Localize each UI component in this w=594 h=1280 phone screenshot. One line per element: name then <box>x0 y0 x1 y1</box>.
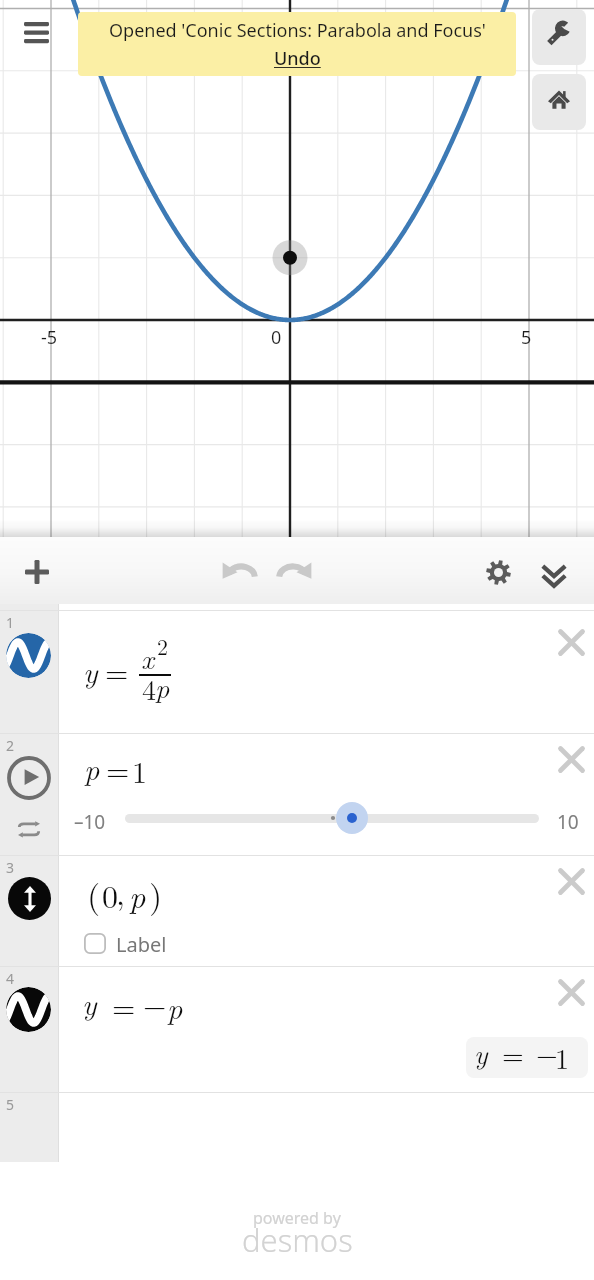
staticText: ) <box>149 870 163 918</box>
staticText: 5 <box>6 1095 15 1114</box>
button[interactable]: Delete <box>547 618 594 666</box>
staticText: 2 <box>6 736 15 755</box>
staticText: , <box>116 869 125 914</box>
staticText: p <box>129 872 146 917</box>
staticText: y <box>83 649 98 691</box>
button[interactable]: Point style <box>8 877 51 920</box>
button[interactable]: Label <box>84 931 167 955</box>
staticText: desmos <box>242 1219 353 1261</box>
button[interactable]: Add expression <box>15 544 59 600</box>
staticText: 2 <box>157 630 169 661</box>
staticText: p <box>167 985 183 1027</box>
staticText: = <box>106 747 130 790</box>
staticText: 10 <box>557 809 579 835</box>
staticText: p <box>84 746 100 788</box>
button[interactable]: Redo <box>271 545 322 595</box>
button[interactable]: Undo <box>212 545 263 595</box>
staticText: –10 <box>74 809 106 835</box>
button[interactable]: Delete <box>547 735 594 783</box>
staticText: x <box>141 637 154 677</box>
button[interactable]: Reverse direction <box>9 809 49 849</box>
button[interactable]: Toggle graph <box>6 987 51 1032</box>
button[interactable]: Collapse <box>531 548 577 603</box>
button[interactable]: Menu <box>4 2 68 64</box>
button[interactable]: Play slider <box>7 756 51 800</box>
staticText: 4 <box>142 668 157 708</box>
button[interactable]: Settings <box>476 544 521 601</box>
staticText: -5 <box>41 325 58 350</box>
button[interactable]: Slider p <box>125 814 539 823</box>
button[interactable]: Home <box>532 74 586 130</box>
staticText: 3 <box>6 858 15 877</box>
staticText: 1 <box>6 613 15 632</box>
button[interactable]: Toggle graph <box>6 633 51 678</box>
staticText: Label <box>116 931 167 955</box>
staticText: y <box>82 981 97 1023</box>
staticText: = <box>502 1033 524 1073</box>
staticText: 4 <box>6 969 15 988</box>
staticText: Undo <box>274 46 321 71</box>
button[interactable]: Opened 'Conic Sections: Parabola and Foc… <box>78 12 516 76</box>
staticText: p <box>155 666 170 706</box>
staticText: 1 <box>555 1037 570 1077</box>
staticText: = <box>105 649 129 692</box>
staticText: = <box>112 984 136 1027</box>
staticText: − <box>536 1032 558 1072</box>
staticText: powered by <box>253 1207 341 1229</box>
staticText: 0 <box>102 872 119 917</box>
staticText: y <box>474 1032 488 1072</box>
staticText: − <box>143 982 167 1025</box>
button[interactable]: y = -1 <box>466 1037 588 1078</box>
staticText: 0 <box>271 325 282 350</box>
staticText: Opened 'Conic Sections: Parabola and Foc… <box>109 18 486 43</box>
staticText: 5 <box>521 325 532 350</box>
staticText: ( <box>87 870 101 918</box>
button[interactable]: Tools <box>532 9 586 65</box>
staticText: 1 <box>132 749 147 792</box>
button[interactable]: Delete <box>547 968 594 1016</box>
button[interactable]: Delete <box>547 857 594 905</box>
